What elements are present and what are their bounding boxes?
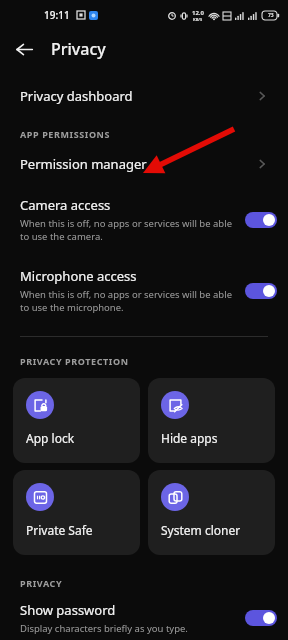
staticText: Camera access <box>20 196 111 214</box>
button[interactable]: System cloner <box>148 470 275 555</box>
button[interactable]: Toggle <box>245 212 277 228</box>
staticText: Privacy dashboard <box>20 87 256 105</box>
staticText: Microphone access <box>20 267 137 285</box>
staticText: Privacy <box>51 38 106 60</box>
staticText: PRIVACY PROTECTION <box>20 355 129 367</box>
button[interactable]: Toggle <box>245 283 277 299</box>
button[interactable]: Show password <box>0 597 288 639</box>
button[interactable]: Back <box>7 32 41 66</box>
button[interactable]: Toggle <box>245 610 277 626</box>
button[interactable]: Microphone access <box>0 263 288 318</box>
staticText: Display characters briefly as you type. <box>20 622 188 635</box>
staticText: 73 <box>268 12 274 19</box>
button[interactable]: Privacy dashboard <box>0 80 288 112</box>
staticText: System cloner <box>161 522 241 538</box>
staticText: Hide apps <box>161 430 218 446</box>
staticText: KB/S <box>193 17 203 22</box>
button[interactable]: Camera access <box>0 192 288 247</box>
staticText: Permission manager <box>20 155 256 173</box>
button[interactable]: App lock <box>13 378 140 463</box>
button[interactable]: Permission manager <box>0 148 288 180</box>
staticText: App lock <box>26 430 75 446</box>
button[interactable]: Private Safe <box>13 470 140 555</box>
staticText: When this is off, no apps or services wi… <box>20 217 233 243</box>
staticText: Private Safe <box>26 522 93 538</box>
staticText: Show password <box>20 601 116 619</box>
staticText: 12.0 <box>192 9 204 17</box>
staticText: 19:11 <box>44 8 70 22</box>
button[interactable]: Hide apps <box>148 378 275 463</box>
staticText: PRIVACY <box>20 577 63 589</box>
staticText: When this is off, no apps or services wi… <box>20 288 233 314</box>
staticText: APP PERMISSIONS <box>20 128 111 140</box>
